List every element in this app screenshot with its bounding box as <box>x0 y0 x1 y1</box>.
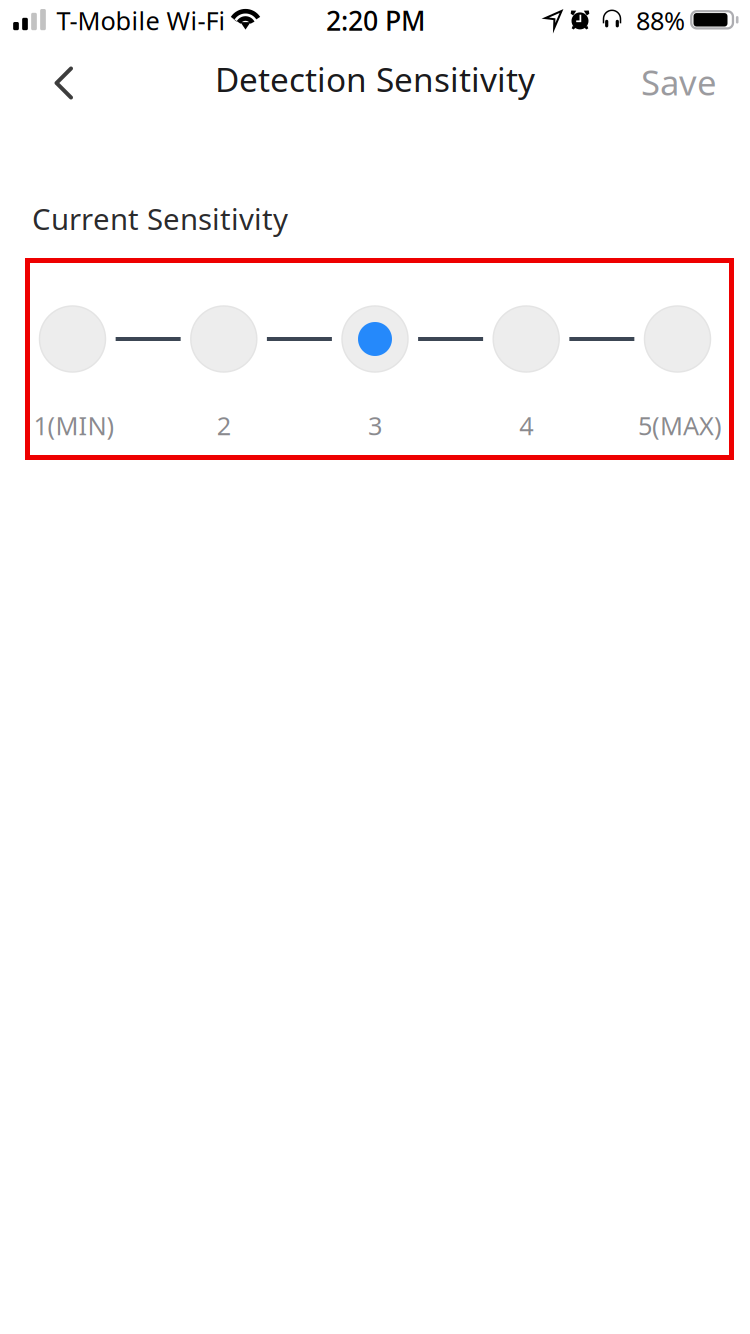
button[interactable]: Back <box>24 47 102 119</box>
button[interactable]: Sensitivity level 4 <box>493 306 559 372</box>
staticText: 5(MAX) <box>638 409 722 442</box>
button[interactable]: Sensitivity level 2 <box>191 306 257 372</box>
staticText: 2:20 PM <box>326 3 425 38</box>
staticText: 3 <box>368 409 382 442</box>
button[interactable]: Sensitivity level 3 <box>342 306 408 372</box>
staticText: 1(MIN) <box>33 409 114 442</box>
staticText: 4 <box>519 409 533 442</box>
button[interactable]: Save <box>621 46 737 118</box>
button[interactable]: Sensitivity level 5 <box>644 306 710 372</box>
staticText: 88% <box>636 4 685 37</box>
staticText: Current Sensitivity <box>32 199 288 238</box>
staticText: Save <box>641 59 717 105</box>
staticText: T-Mobile Wi-Fi <box>56 4 225 37</box>
staticText: 2 <box>217 409 231 442</box>
staticText: Detection Sensitivity <box>215 57 535 101</box>
button[interactable]: Sensitivity level 1 <box>39 306 105 372</box>
